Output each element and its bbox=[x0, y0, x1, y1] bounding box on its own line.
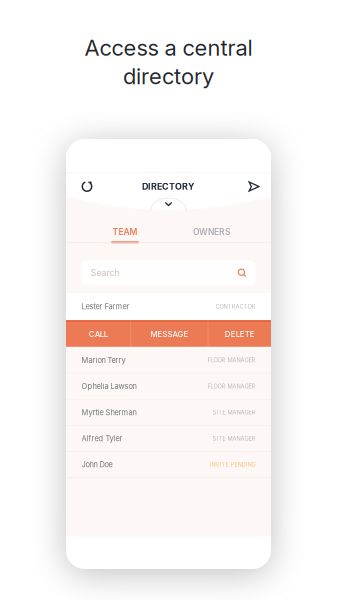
staticText: DELETE bbox=[225, 329, 255, 339]
button[interactable]: MESSAGE bbox=[131, 322, 208, 347]
staticText: SITE MANAGER bbox=[212, 409, 255, 416]
button[interactable]: CALL bbox=[66, 322, 130, 347]
staticText: Myrtie Sherman bbox=[81, 408, 136, 417]
button[interactable]: John Doe bbox=[66, 452, 271, 478]
button[interactable]: Myrtie Sherman bbox=[66, 399, 271, 425]
staticText: FLOOR MANAGER bbox=[207, 383, 255, 390]
staticText: Ophelia Lawson bbox=[81, 382, 136, 391]
staticText: INVITE PENDING bbox=[209, 461, 255, 468]
staticText: DIRECTORY bbox=[142, 181, 195, 192]
button[interactable]: OWNERS bbox=[168, 221, 255, 243]
button[interactable]: Send bbox=[242, 175, 266, 197]
button[interactable]: Marion Terry bbox=[66, 347, 271, 373]
staticText: Access a central bbox=[84, 34, 252, 61]
staticText: CALL bbox=[89, 329, 108, 339]
button[interactable]: TEAM bbox=[81, 221, 168, 243]
button[interactable]: Alfred Tyler bbox=[66, 425, 271, 452]
staticText: directory bbox=[123, 63, 214, 90]
staticText: Search bbox=[90, 267, 119, 278]
button[interactable]: Collapse bbox=[158, 198, 178, 210]
staticText: MESSAGE bbox=[150, 329, 188, 339]
staticText: Alfred Tyler bbox=[81, 434, 122, 443]
staticText: OWNERS bbox=[193, 227, 231, 237]
staticText: John Doe bbox=[81, 460, 112, 469]
staticText: CONTRACTOR bbox=[215, 303, 255, 310]
button[interactable]: DELETE bbox=[208, 322, 271, 347]
button[interactable]: Refresh bbox=[75, 175, 99, 197]
staticText: SITE MANAGER bbox=[212, 435, 255, 442]
staticText: FLOOR MANAGER bbox=[207, 357, 255, 364]
staticText: TEAM bbox=[112, 227, 137, 237]
staticText: Lester Farmer bbox=[81, 302, 129, 311]
button[interactable]: Lester Farmer bbox=[66, 293, 271, 320]
staticText: Marion Terry bbox=[81, 356, 125, 365]
button[interactable]: Ophelia Lawson bbox=[66, 373, 271, 399]
